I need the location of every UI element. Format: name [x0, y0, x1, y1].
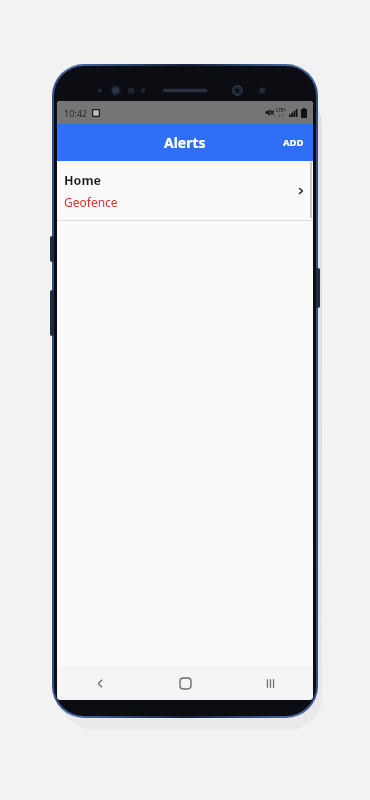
staticText: 10:42 — [64, 107, 88, 119]
staticText: Geofence — [64, 194, 118, 210]
button[interactable]: ADD — [274, 128, 313, 157]
staticText: LTE+ — [276, 107, 287, 113]
staticText: ADD — [283, 136, 304, 149]
staticText: Alerts — [164, 133, 206, 152]
staticText: ↓↑ — [278, 113, 285, 118]
other: Open alert details — [295, 185, 307, 197]
button[interactable]: Home — [143, 666, 228, 700]
button[interactable]: Home — [57, 161, 313, 220]
button[interactable]: Back — [57, 666, 143, 700]
staticText: Home — [64, 172, 102, 189]
button[interactable]: Recent apps — [228, 666, 313, 700]
